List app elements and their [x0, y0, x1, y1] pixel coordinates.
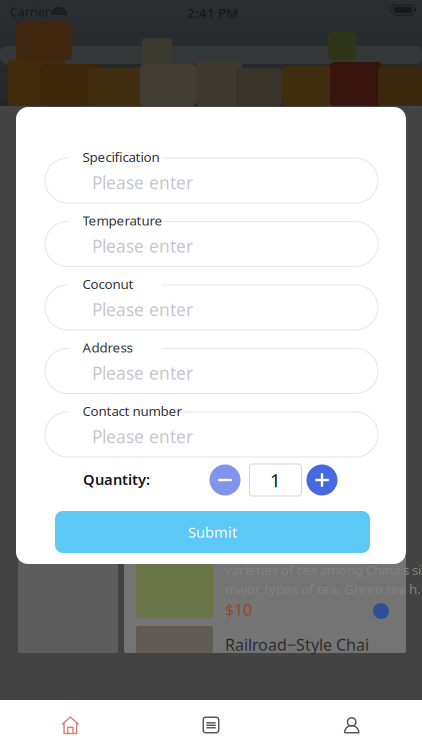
button[interactable]: Decrease quantity [209, 464, 240, 495]
staticText: Specification [82, 148, 159, 166]
button[interactable]: Orders [141, 700, 281, 750]
staticText: Quantity: [83, 469, 150, 489]
staticText: Railroad−Style Chai [225, 634, 369, 655]
button[interactable]: Increase quantity [306, 464, 337, 495]
staticText: Address [82, 338, 132, 356]
staticText: major types of tea. Green tea h... [225, 580, 422, 598]
staticText: Please enter [92, 234, 193, 257]
staticText: 2:41 PM [187, 4, 238, 22]
button[interactable]: Profile [281, 700, 422, 750]
staticText: Please enter [92, 171, 193, 194]
staticText: Submit [188, 522, 237, 542]
staticText: Please enter [92, 361, 193, 384]
button[interactable]: Home [0, 700, 141, 750]
staticText: Coconut [82, 275, 133, 293]
staticText: Contact number [82, 402, 182, 420]
staticText: Carrier [10, 4, 50, 20]
staticText: Temperature [82, 211, 162, 229]
staticText: $10 [225, 599, 252, 620]
staticText: Please enter [92, 298, 193, 321]
button[interactable]: Submit [55, 511, 370, 553]
staticText: Please enter [92, 425, 193, 448]
staticText: varieties of tea among China's six [225, 561, 422, 579]
staticText: 1 [270, 468, 281, 492]
